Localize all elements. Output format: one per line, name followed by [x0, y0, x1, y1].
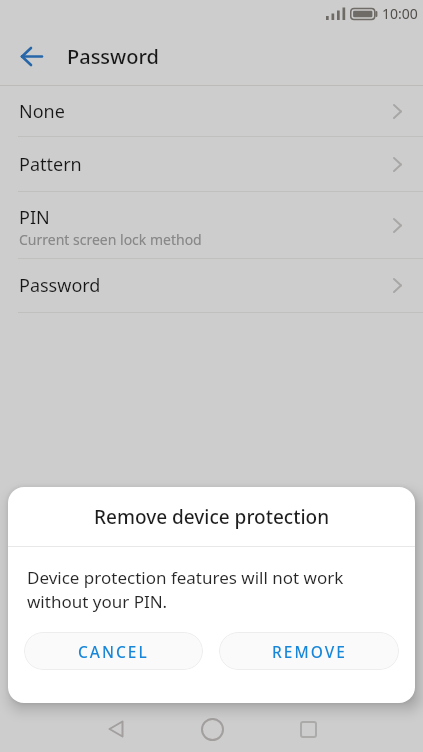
staticText: REMOVE	[272, 641, 347, 662]
staticText: Current screen lock method	[19, 230, 202, 249]
button[interactable]	[188, 706, 236, 752]
staticText: Password	[19, 273, 101, 298]
staticText: CANCEL	[78, 641, 149, 662]
button[interactable]: Pattern	[0, 137, 423, 191]
button[interactable]	[92, 706, 140, 752]
button[interactable]	[13, 37, 51, 75]
staticText: Device protection features will not work…	[27, 566, 344, 613]
staticText: Password	[67, 43, 159, 70]
staticText: Remove device protection	[94, 504, 330, 530]
button[interactable]: CANCEL	[24, 632, 203, 670]
button[interactable]: REMOVE	[219, 632, 399, 670]
button[interactable]: Password	[0, 259, 423, 312]
button[interactable]	[284, 706, 332, 752]
staticText: 10:00	[382, 4, 418, 23]
staticText: Pattern	[19, 152, 82, 177]
staticText: PIN	[19, 205, 50, 230]
button[interactable]: None	[0, 86, 423, 136]
button[interactable]: PIN	[0, 192, 423, 258]
staticText: None	[19, 99, 65, 124]
